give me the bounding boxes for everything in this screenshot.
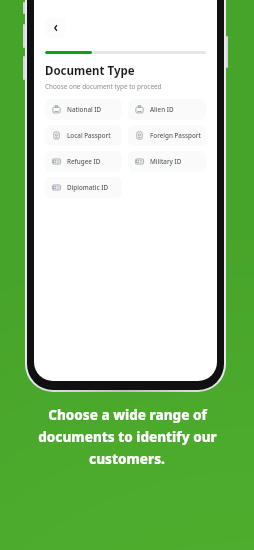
button[interactable]: Foreign Passport bbox=[128, 125, 206, 146]
staticText: Local Passport bbox=[67, 131, 111, 140]
button[interactable]: Alien ID bbox=[128, 99, 206, 120]
staticText: documents to identify our bbox=[38, 428, 217, 446]
button[interactable]: Back bbox=[45, 17, 66, 38]
staticText: Military ID bbox=[150, 157, 182, 166]
button[interactable]: Diplomatic ID bbox=[45, 177, 122, 198]
button[interactable]: Refugee ID bbox=[45, 151, 122, 172]
staticText: customers. bbox=[89, 450, 165, 468]
staticText: Foreign Passport bbox=[150, 131, 201, 140]
staticText: National ID bbox=[67, 105, 102, 114]
staticText: Alien ID bbox=[150, 105, 174, 114]
button[interactable]: National ID bbox=[45, 99, 122, 120]
staticText: Choose a wide range of bbox=[48, 406, 207, 424]
staticText: Diplomatic ID bbox=[67, 183, 108, 192]
staticText: Refugee ID bbox=[67, 157, 101, 166]
button[interactable]: Local Passport bbox=[45, 125, 122, 146]
staticText: Choose one document type to proceed bbox=[45, 82, 162, 91]
button[interactable]: Military ID bbox=[128, 151, 206, 172]
staticText: Document Type bbox=[45, 63, 135, 79]
